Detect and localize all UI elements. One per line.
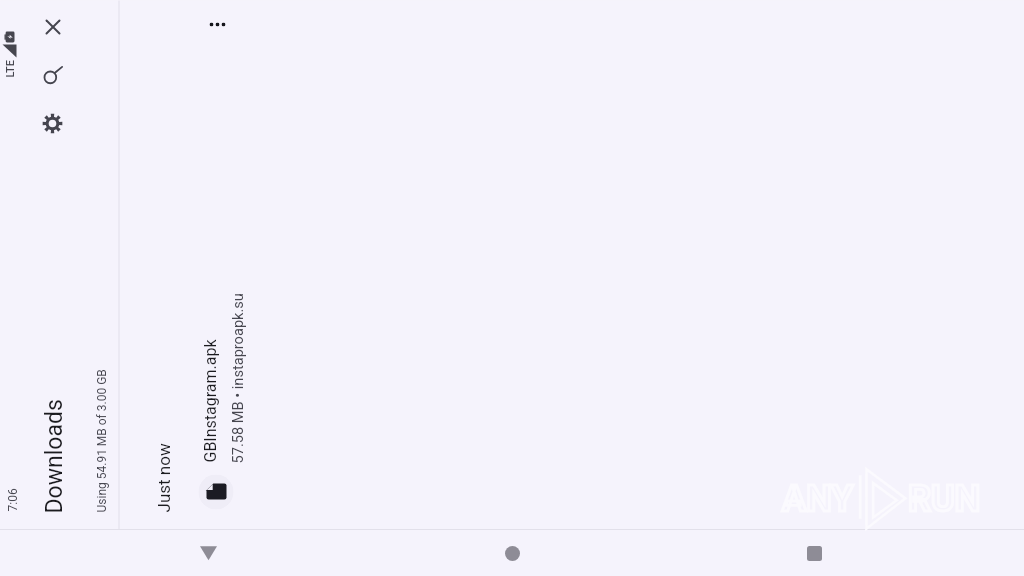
button[interactable]: Close [28, 3, 76, 51]
staticText: ANY [782, 478, 854, 520]
staticText: Using 54.91 MB of 3.00 GB [94, 368, 108, 512]
button[interactable]: Back [172, 530, 244, 576]
button[interactable]: Search [28, 51, 76, 99]
button[interactable]: Recent apps [778, 530, 850, 576]
staticText: GBInstagram.apk [200, 338, 219, 462]
staticText: RUN [908, 478, 981, 520]
staticText: LTE [3, 59, 16, 77]
button[interactable]: Home [476, 530, 548, 576]
staticText: 57.58 MB • instaproapk.su [228, 292, 245, 463]
button[interactable]: Settings [28, 99, 76, 147]
staticText: Downloads [40, 398, 67, 513]
button[interactable]: GBInstagram.apk [186, 0, 258, 529]
staticText: 7:06 [5, 487, 19, 511]
staticText: Just now [153, 442, 173, 512]
button[interactable]: More options [195, 2, 239, 46]
